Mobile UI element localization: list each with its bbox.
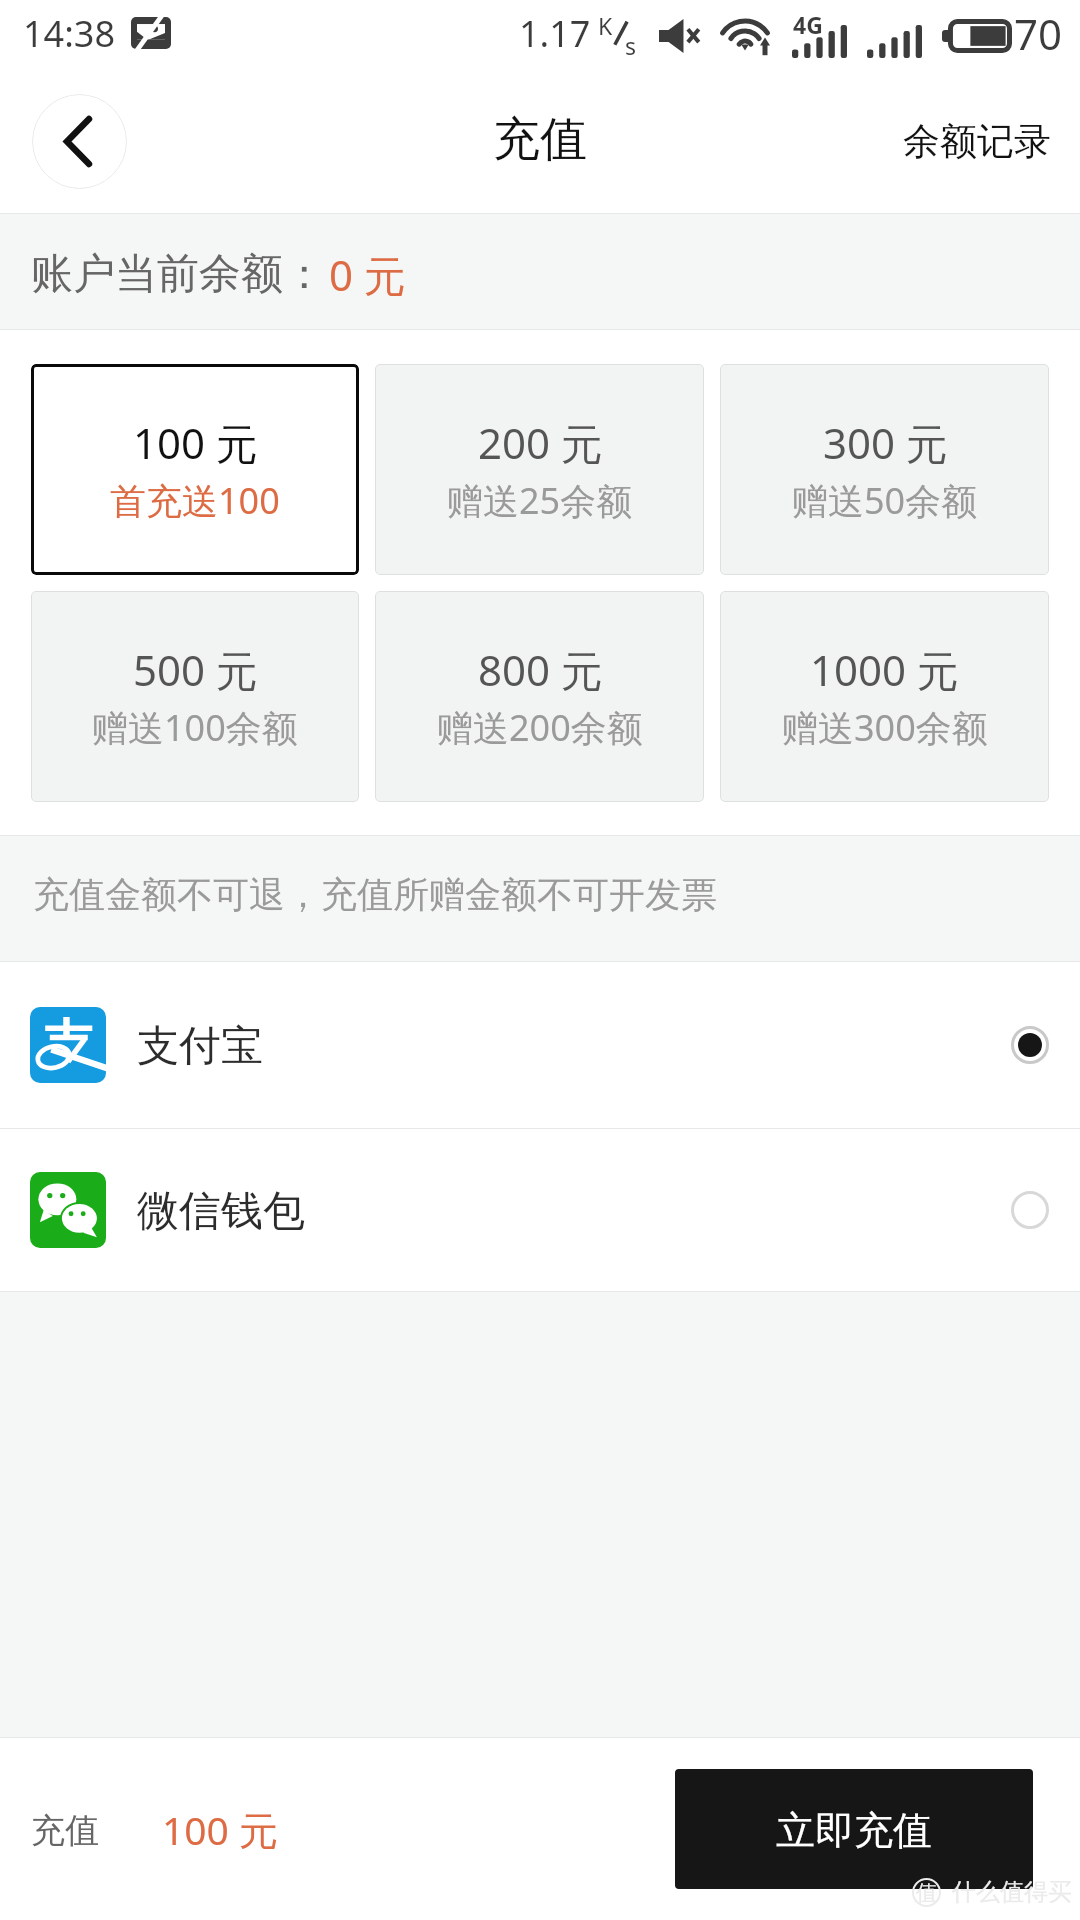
- staticText: 首充送100: [110, 476, 280, 525]
- staticText: 70: [1014, 5, 1063, 62]
- staticText: 赠送50余额: [792, 476, 978, 525]
- staticText: 100 元: [162, 1803, 279, 1856]
- staticText: 1000 元: [810, 641, 960, 698]
- button[interactable]: 200 元: [375, 364, 704, 575]
- staticText: 100 元: [133, 414, 258, 471]
- staticText: 充值: [493, 110, 587, 169]
- staticText: 0 元: [329, 246, 406, 303]
- staticText: 赠送300余额: [782, 703, 988, 752]
- staticText: 14:38: [23, 9, 116, 58]
- staticText: 800 元: [478, 641, 603, 698]
- staticText: 300 元: [823, 414, 948, 471]
- staticText: 赠送25余额: [447, 476, 633, 525]
- staticText: 账户当前余额：: [31, 248, 325, 301]
- staticText: 余额记录: [903, 118, 1051, 165]
- button[interactable]: 支付宝: [0, 962, 1080, 1128]
- staticText: K: [598, 10, 613, 41]
- button[interactable]: 800 元: [375, 591, 704, 802]
- staticText: 赠送100余额: [92, 703, 298, 752]
- staticText: 500 元: [133, 641, 258, 698]
- button[interactable]: 100 元: [31, 364, 359, 575]
- button[interactable]: 300 元: [720, 364, 1049, 575]
- button[interactable]: 立即充值: [675, 1769, 1033, 1889]
- button[interactable]: 微信钱包: [0, 1129, 1080, 1291]
- staticText: 赠送200余额: [437, 703, 643, 752]
- staticText: 什么值得买: [952, 1877, 1072, 1907]
- staticText: 充值金额不可退，充值所赠金额不可开发票: [33, 872, 717, 917]
- staticText: 200 元: [478, 414, 603, 471]
- staticText: 充值: [31, 1809, 99, 1852]
- staticText: 立即充值: [776, 1806, 932, 1855]
- button[interactable]: 1000 元: [720, 591, 1049, 802]
- button[interactable]: 余额记录: [874, 100, 1080, 183]
- staticText: 1.17: [519, 9, 591, 58]
- button[interactable]: 返回: [32, 94, 127, 189]
- staticText: s: [625, 30, 637, 61]
- staticText: 4G: [793, 9, 823, 40]
- staticText: 支付宝: [137, 1020, 263, 1073]
- button[interactable]: 500 元: [31, 591, 359, 802]
- staticText: 微信钱包: [137, 1185, 305, 1238]
- staticText: 值: [916, 1880, 937, 1906]
